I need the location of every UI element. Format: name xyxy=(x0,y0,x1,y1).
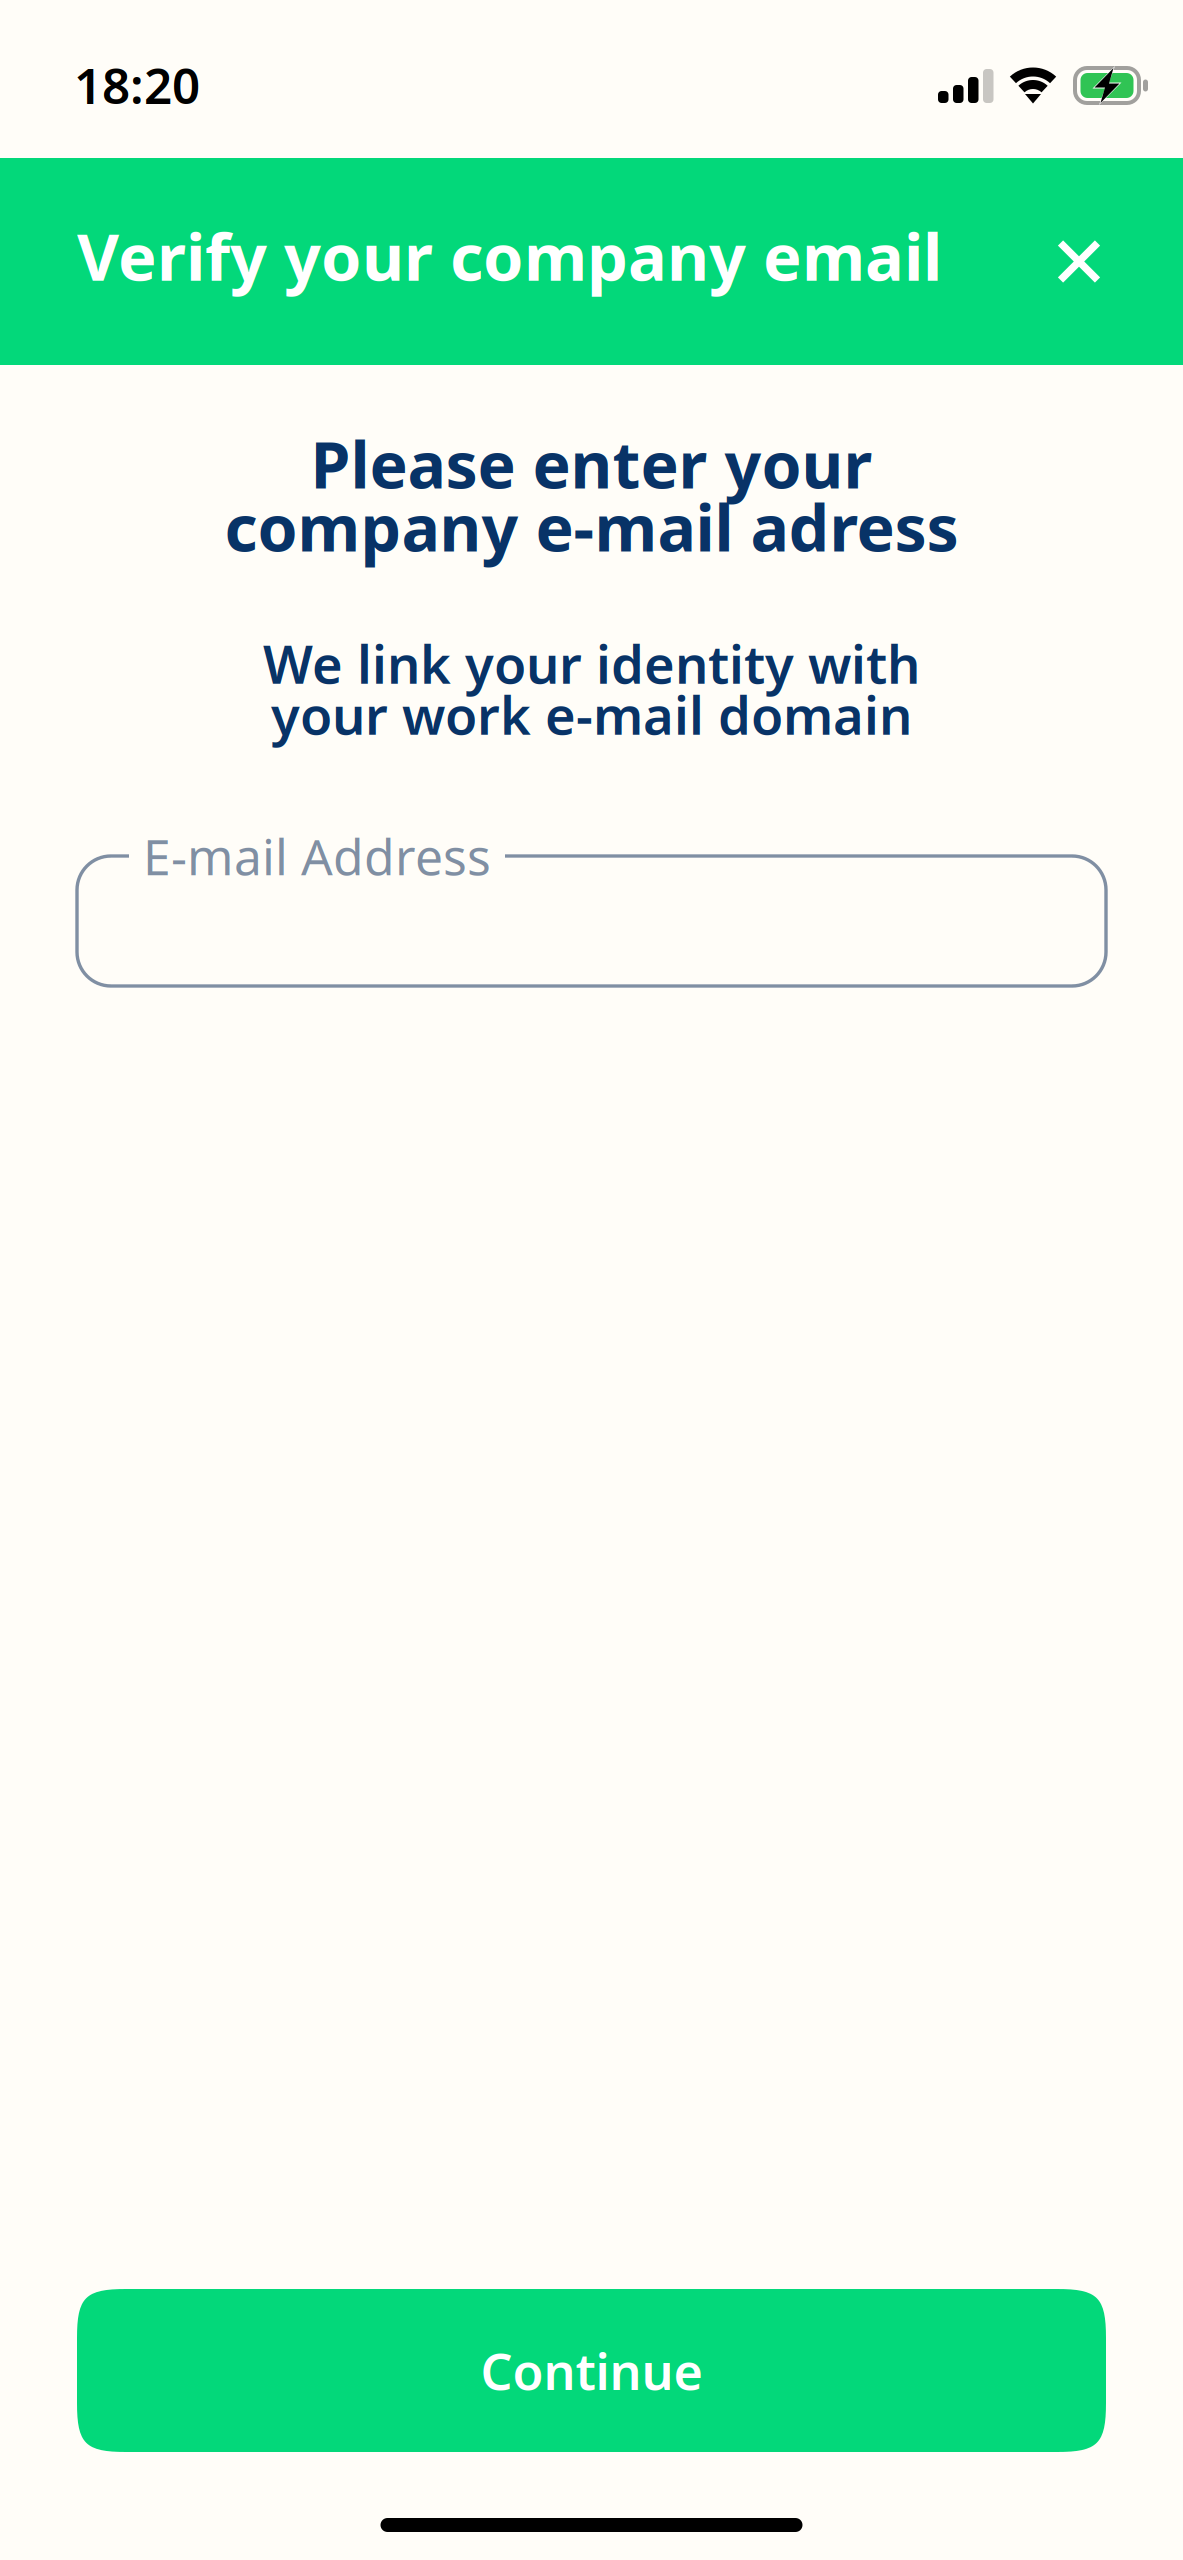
button[interactable]: Close xyxy=(1027,209,1131,313)
staticText: E-mail Address xyxy=(143,822,491,890)
button[interactable]: Continue xyxy=(77,2289,1106,2452)
button[interactable]: E-mail Address xyxy=(77,830,1106,986)
staticText: Please enter your xyxy=(310,420,872,507)
staticText: Continue xyxy=(480,2336,702,2405)
staticText: We link your identity with xyxy=(263,628,920,699)
staticText: Verify your company email xyxy=(77,211,942,300)
staticText: your work e-mail domain xyxy=(271,679,912,750)
staticText: 18:20 xyxy=(74,52,200,117)
staticText: company e-mail adress xyxy=(224,483,958,570)
